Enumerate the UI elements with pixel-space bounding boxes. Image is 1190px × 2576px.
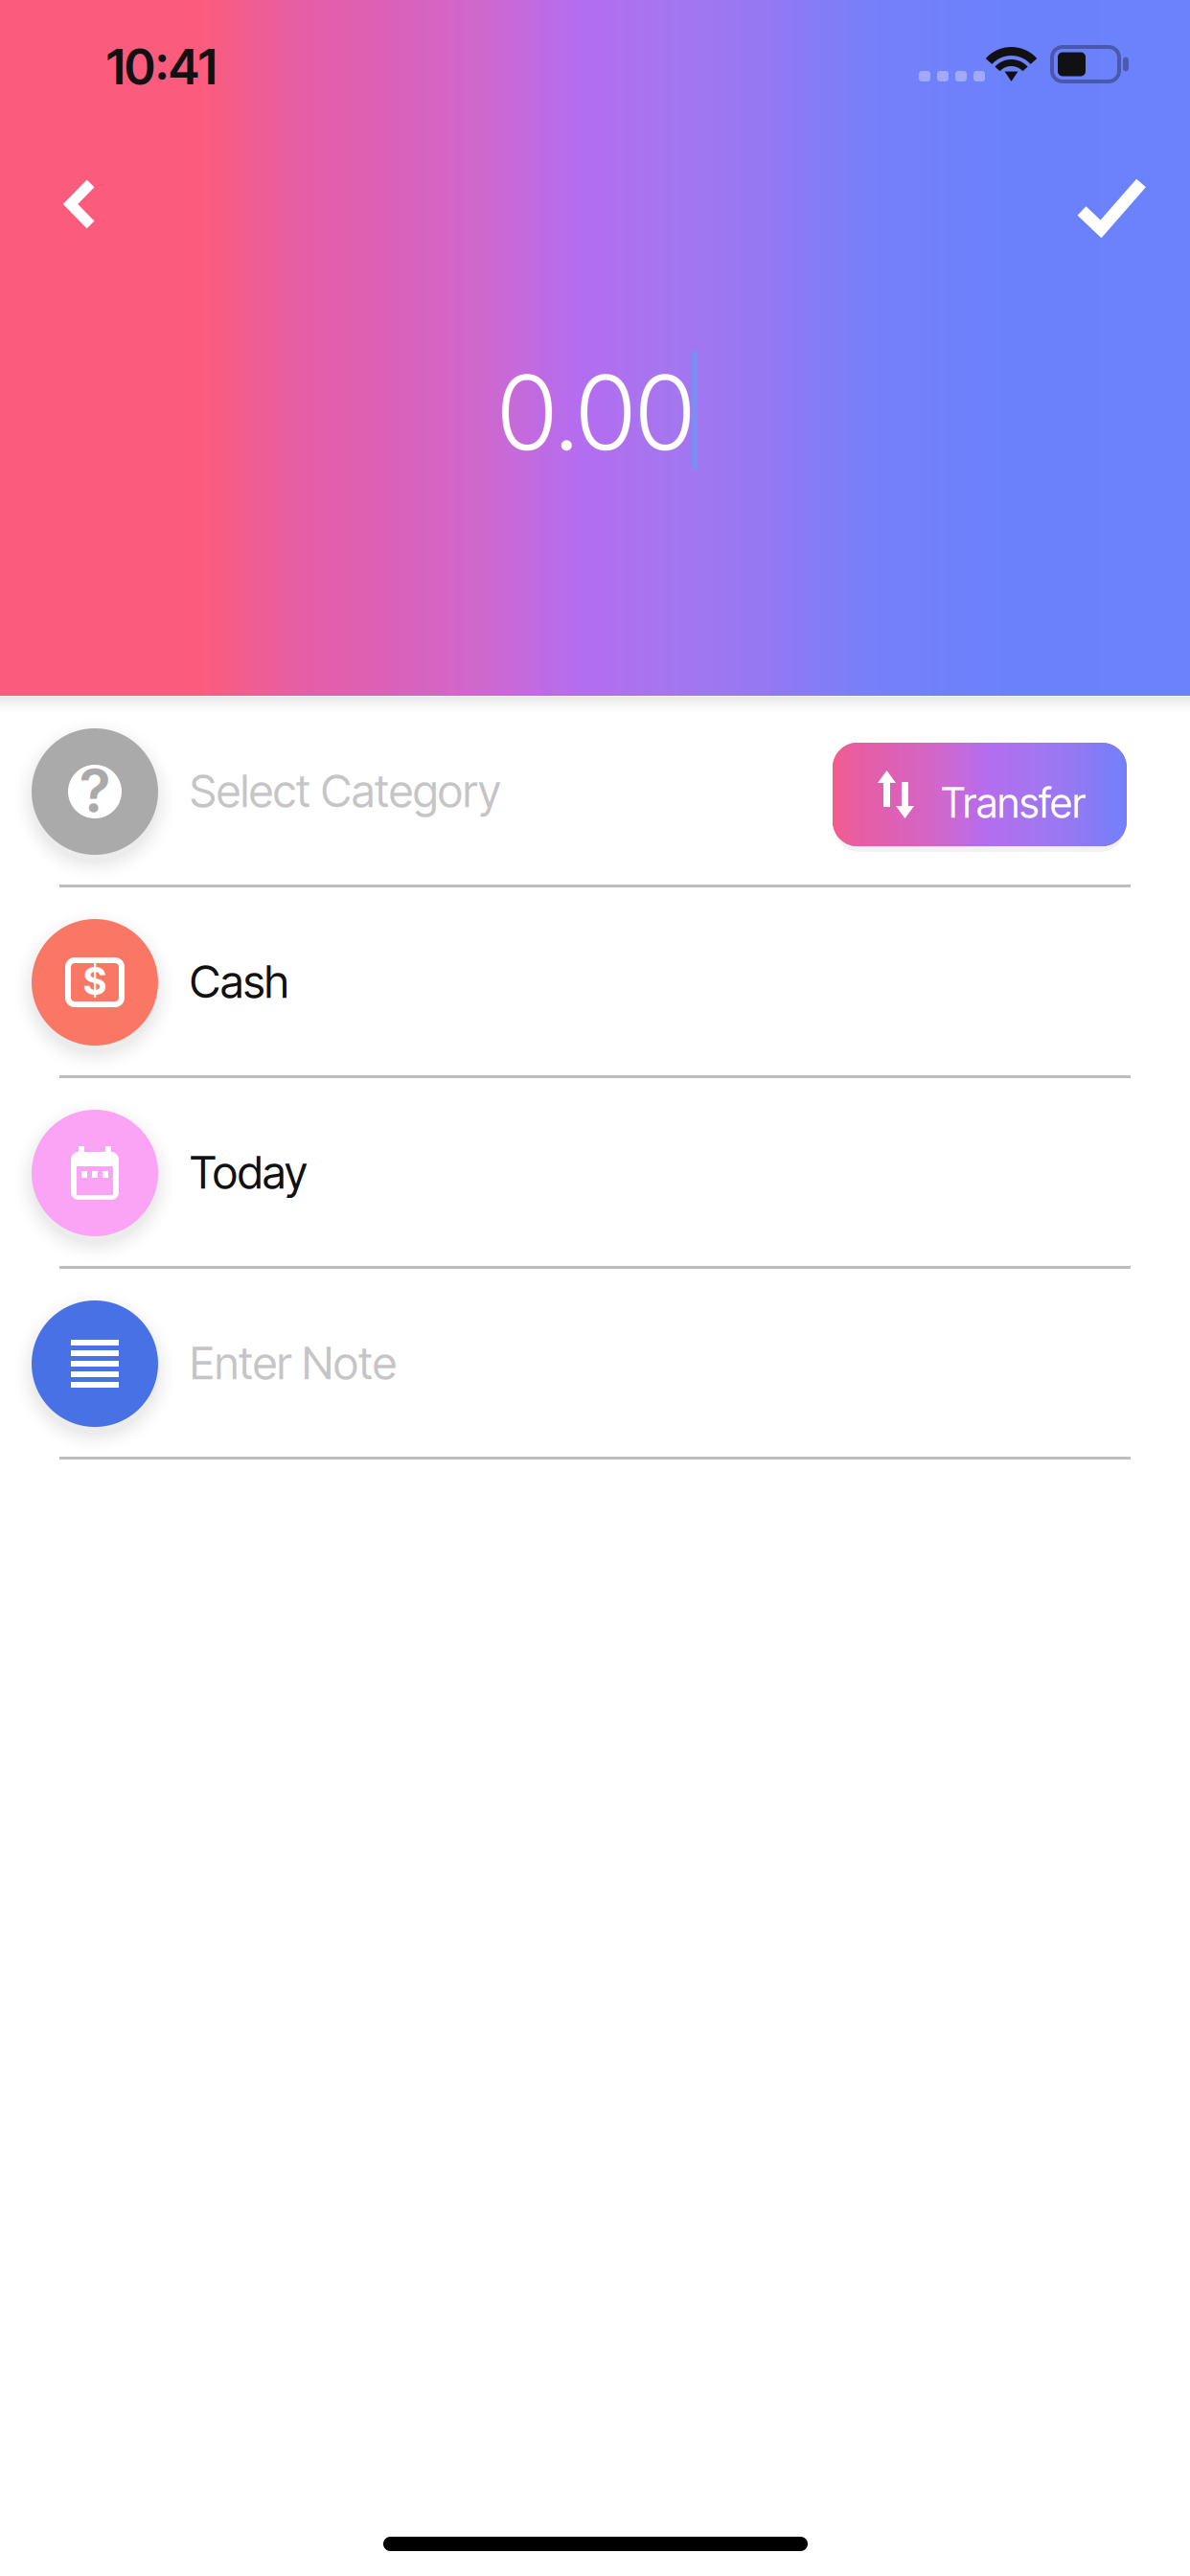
button[interactable]: Back: [22, 149, 139, 260]
staticText: Transfer: [941, 778, 1086, 828]
staticText: $: [83, 959, 106, 1004]
staticText: Select Category: [190, 764, 501, 818]
button[interactable]: Enter Note: [0, 1268, 1190, 1459]
button[interactable]: $: [0, 886, 1190, 1077]
button[interactable]: Transfer: [833, 739, 1127, 850]
staticText: Cash: [190, 954, 288, 1009]
staticText: Enter Note: [190, 1336, 397, 1390]
staticText: Today: [190, 1145, 308, 1199]
button[interactable]: Today: [0, 1077, 1190, 1268]
staticText: ?: [80, 755, 110, 826]
staticText: 10:41: [106, 37, 217, 96]
button[interactable]: ?: [0, 696, 1190, 886]
button[interactable]: Save: [1049, 150, 1174, 262]
staticText: 0.00: [497, 351, 695, 474]
